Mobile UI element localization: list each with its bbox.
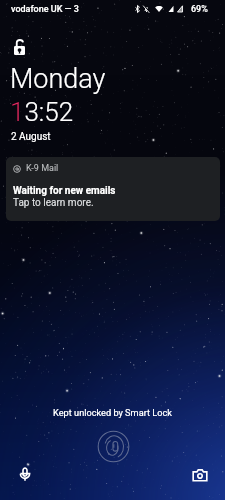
staticText: Waiting for new emails [13, 185, 116, 197]
button[interactable]: Voice assistant [14, 464, 36, 486]
staticText: Tap to learn more. [13, 197, 94, 209]
staticText: Kept unlocked by Smart Lock [53, 407, 172, 418]
staticText: 2 August [11, 131, 51, 143]
staticText: 13:52 [10, 97, 74, 127]
other: Device unlocked [14, 40, 25, 55]
staticText: K-9 Mail [26, 163, 59, 174]
staticText: 69% [191, 4, 208, 15]
staticText: vodafone UK — 3 [11, 4, 79, 15]
button[interactable]: K-9 Mail [6, 157, 220, 221]
button[interactable]: Camera [189, 464, 211, 486]
button[interactable]: Fingerprint unlock [97, 430, 130, 463]
staticText: Monday [10, 63, 106, 95]
